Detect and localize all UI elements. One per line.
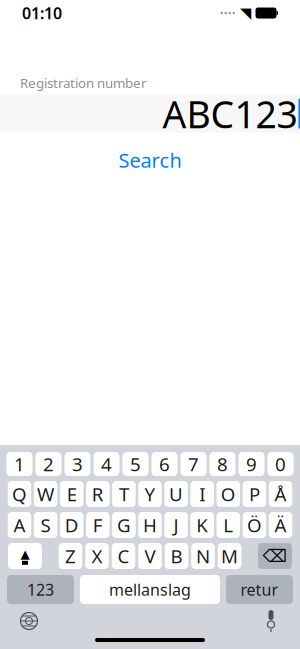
staticText: ▲ <box>20 547 29 561</box>
button[interactable]: Search <box>102 141 197 179</box>
button[interactable]: mellanslag <box>80 575 220 604</box>
button[interactable]: P <box>243 481 266 507</box>
button[interactable]: Å <box>269 481 292 507</box>
button[interactable]: Dictate <box>256 606 286 636</box>
staticText: 4 <box>101 452 112 476</box>
button[interactable]: 5 <box>122 452 148 476</box>
staticText: 7 <box>188 452 199 476</box>
staticText: 123 <box>27 579 54 600</box>
button[interactable]: 0 <box>267 452 293 476</box>
staticText: C <box>117 544 129 568</box>
staticText: Ä <box>274 513 286 537</box>
staticText: B <box>170 544 182 568</box>
staticText: 5 <box>130 452 141 476</box>
button[interactable]: J <box>164 512 188 538</box>
button[interactable]: 6 <box>151 452 177 476</box>
staticText: Å <box>274 482 286 506</box>
staticText: 8 <box>217 452 228 476</box>
staticText: M <box>221 544 238 568</box>
button[interactable]: O <box>216 481 240 507</box>
staticText: X <box>91 544 102 568</box>
staticText: I <box>199 482 205 506</box>
button[interactable]: I <box>190 481 214 507</box>
button[interactable]: 3 <box>64 452 90 476</box>
button[interactable]: E <box>60 481 83 507</box>
staticText: W <box>37 482 54 506</box>
button[interactable]: K <box>190 512 214 538</box>
staticText: T <box>119 482 129 506</box>
button[interactable]: T <box>112 481 136 507</box>
button[interactable]: 7 <box>180 452 206 476</box>
staticText: ◥ <box>240 5 251 21</box>
button[interactable]: 8 <box>209 452 235 476</box>
button[interactable]: X <box>85 543 109 569</box>
staticText: E <box>67 482 77 506</box>
button[interactable]: Next keyboard <box>14 606 44 636</box>
button[interactable]: W <box>34 481 57 507</box>
button[interactable]: S <box>34 512 57 538</box>
button[interactable]: 123 <box>7 575 74 604</box>
staticText: 2 <box>43 452 54 476</box>
button[interactable]: Ö <box>243 512 266 538</box>
staticText: Registration number <box>20 74 147 92</box>
staticText: U <box>169 482 183 506</box>
staticText: O <box>221 482 236 506</box>
staticText: A <box>13 513 25 537</box>
button[interactable]: 2 <box>35 452 61 476</box>
button[interactable]: 9 <box>238 452 264 476</box>
button[interactable]: N <box>191 543 215 569</box>
staticText: D <box>65 513 79 537</box>
button[interactable]: L <box>216 512 240 538</box>
button[interactable]: 1 <box>6 452 32 476</box>
staticText: P <box>249 482 260 506</box>
staticText: G <box>117 513 131 537</box>
button[interactable]: Shift <box>8 543 42 569</box>
staticText: 9 <box>246 452 257 476</box>
button[interactable]: D <box>60 512 83 538</box>
button[interactable]: Q <box>8 481 31 507</box>
button[interactable]: R <box>86 481 110 507</box>
button[interactable]: C <box>112 543 135 569</box>
button[interactable]: Y <box>138 481 162 507</box>
staticText: Ö <box>247 513 262 537</box>
button[interactable]: B <box>165 543 188 569</box>
button[interactable]: H <box>138 512 162 538</box>
staticText: ABC123 <box>162 89 297 138</box>
staticText: N <box>196 544 210 568</box>
staticText: 01:10 <box>22 2 62 24</box>
staticText: L <box>223 513 233 537</box>
button[interactable]: Z <box>59 543 82 569</box>
button[interactable]: V <box>138 543 162 569</box>
staticText: K <box>196 513 208 537</box>
staticText: 6 <box>159 452 170 476</box>
staticText: retur <box>240 579 278 600</box>
staticText: F <box>93 513 103 537</box>
button[interactable]: F <box>86 512 110 538</box>
button[interactable]: Ä <box>269 512 292 538</box>
button[interactable]: U <box>164 481 188 507</box>
staticText: mellanslag <box>109 579 191 600</box>
staticText: V <box>144 544 155 568</box>
staticText: J <box>174 513 179 537</box>
staticText: S <box>41 513 51 537</box>
staticText: R <box>92 482 104 506</box>
button[interactable]: M <box>218 543 241 569</box>
staticText: 0 <box>275 452 286 476</box>
staticText: 1 <box>14 452 25 476</box>
button[interactable]: retur <box>226 575 293 604</box>
button[interactable]: Delete <box>258 543 292 569</box>
button[interactable]: G <box>112 512 136 538</box>
staticText: Y <box>144 482 155 506</box>
staticText: ⌫ <box>262 546 287 566</box>
staticText: H <box>143 513 157 537</box>
staticText: Z <box>65 544 76 568</box>
button[interactable]: 4 <box>93 452 119 476</box>
staticText: Search <box>118 147 181 173</box>
button[interactable]: A <box>8 512 31 538</box>
staticText: Q <box>12 482 27 506</box>
staticText: 3 <box>72 452 83 476</box>
